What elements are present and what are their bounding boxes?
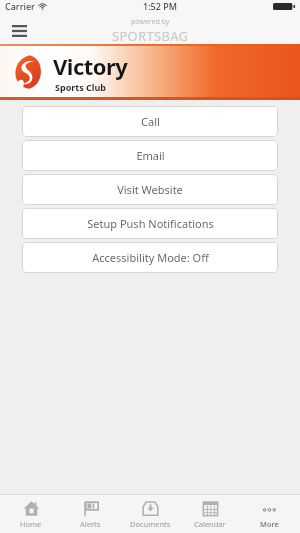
button[interactable]: Setup Push Notifications — [22, 208, 278, 239]
staticText: More — [260, 519, 279, 529]
button[interactable]: Visit Website — [22, 174, 278, 205]
staticText: 1:52 PM — [143, 0, 177, 12]
staticText: Alerts — [80, 519, 101, 529]
staticText: Carrier — [5, 0, 35, 12]
button[interactable]: Email — [22, 140, 278, 171]
staticText: Email — [136, 148, 165, 163]
staticText: powered by — [131, 17, 170, 27]
staticText: Calendar — [194, 519, 226, 529]
staticText: Call — [141, 114, 160, 129]
button[interactable]: Call — [22, 106, 278, 137]
button[interactable]: Home — [2, 495, 60, 533]
button[interactable]: Alerts — [61, 495, 119, 533]
button[interactable]: Calendar — [181, 495, 239, 533]
staticText: Setup Push Notifications — [87, 216, 214, 231]
staticText: Sports Club — [55, 81, 107, 93]
staticText: Victory — [53, 51, 128, 81]
staticText: Home — [20, 519, 42, 529]
staticText: SPORTSBAG — [112, 27, 189, 43]
staticText: Documents — [130, 519, 171, 529]
button[interactable]: Menu — [6, 18, 32, 44]
staticText: Accessibility Mode: Off — [92, 250, 209, 265]
button[interactable]: Documents — [121, 495, 179, 533]
staticText: Visit Website — [117, 182, 183, 197]
button[interactable]: Accessibility Mode: Off — [22, 242, 278, 273]
button[interactable]: More — [240, 495, 298, 533]
